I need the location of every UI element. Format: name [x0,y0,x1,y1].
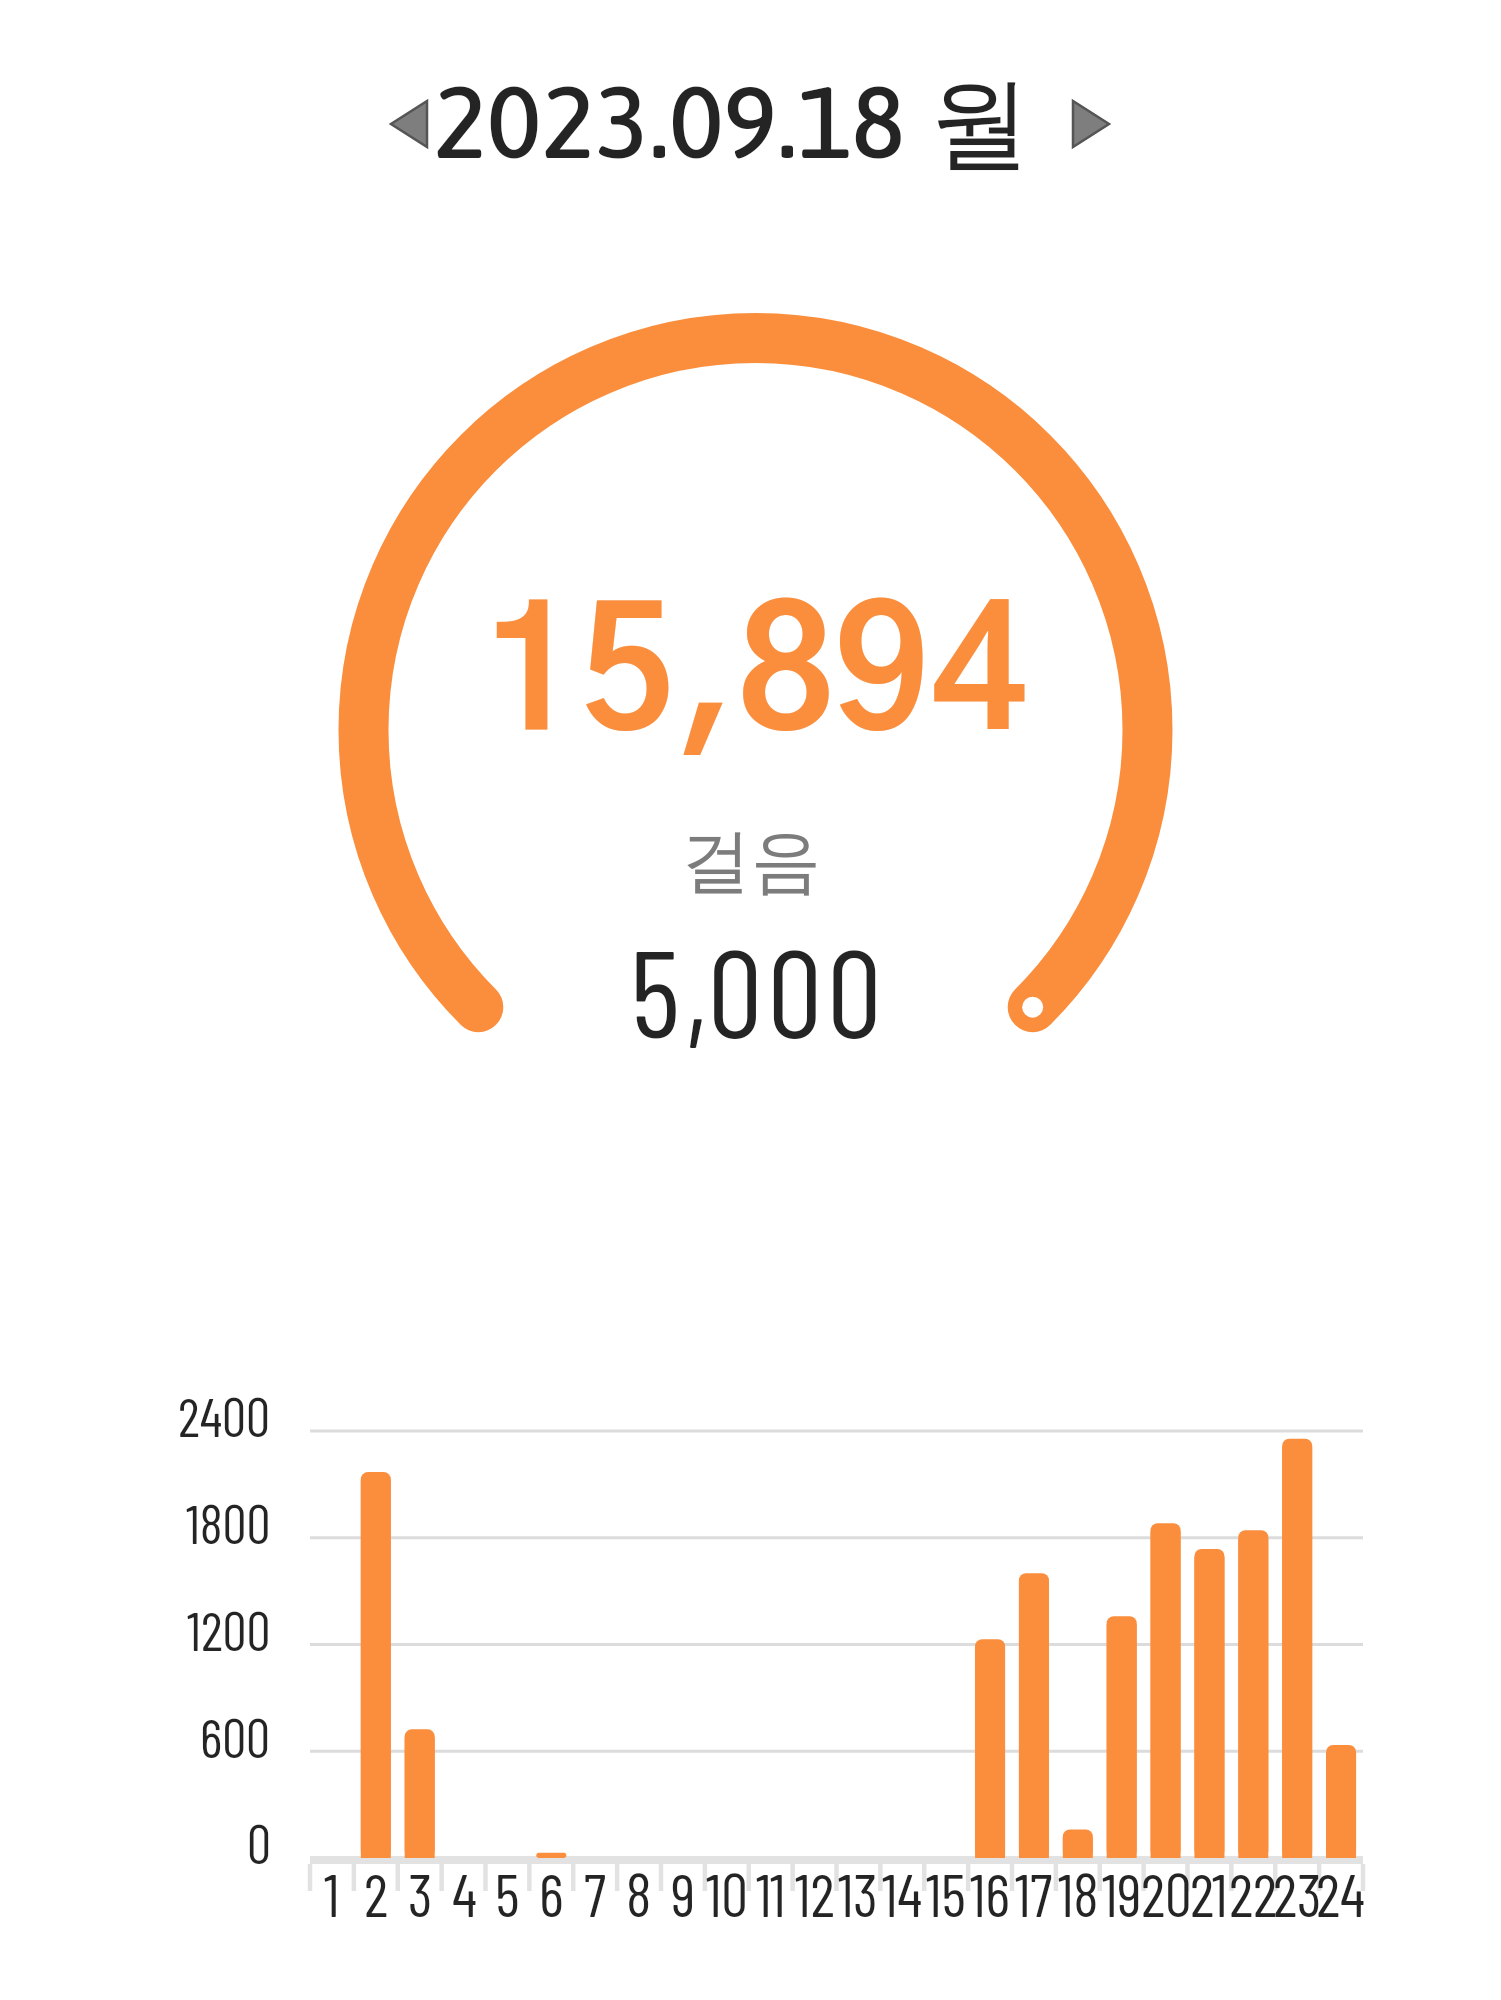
staticText: 23 [1273,1857,1322,1929]
staticText: 6 [539,1857,564,1929]
staticText: 걸음 [681,818,821,906]
staticText: 20 [1141,1857,1192,1929]
staticText: 1 [324,1857,340,1929]
staticText: 13 [838,1857,878,1929]
staticText: 5,000 [630,915,887,1063]
staticText: 14 [882,1857,923,1929]
staticText: 18 [1058,1857,1099,1929]
staticText: 5 [495,1857,520,1929]
staticText: 600 [200,1704,271,1769]
staticText: 19 [1102,1857,1142,1929]
staticText: 2 [364,1857,389,1929]
staticText: 0 [247,1810,271,1875]
staticText: 21 [1190,1857,1228,1929]
staticText: 12 [795,1857,835,1929]
staticText: 2023.09.18 월 [433,61,1031,188]
staticText: 8 [626,1857,652,1929]
staticText: 17 [1015,1857,1053,1929]
staticText: 2400 [178,1383,271,1448]
staticText: 4 [452,1857,477,1929]
staticText: 15,894 [483,596,1028,761]
staticText: 15 [926,1857,966,1929]
staticText: 1200 [187,1597,271,1662]
staticText: 11 [756,1857,786,1929]
staticText: 16 [970,1857,1010,1929]
staticText: 10 [706,1857,748,1929]
staticText: 9 [671,1857,696,1929]
staticText: 1800 [186,1490,271,1555]
button[interactable]: Previous day [369,80,449,168]
button[interactable]: Next day [1051,80,1131,168]
staticText: 22 [1229,1857,1278,1929]
staticText: 3 [408,1857,433,1929]
staticText: 24 [1316,1857,1366,1929]
staticText: 7 [584,1857,606,1929]
